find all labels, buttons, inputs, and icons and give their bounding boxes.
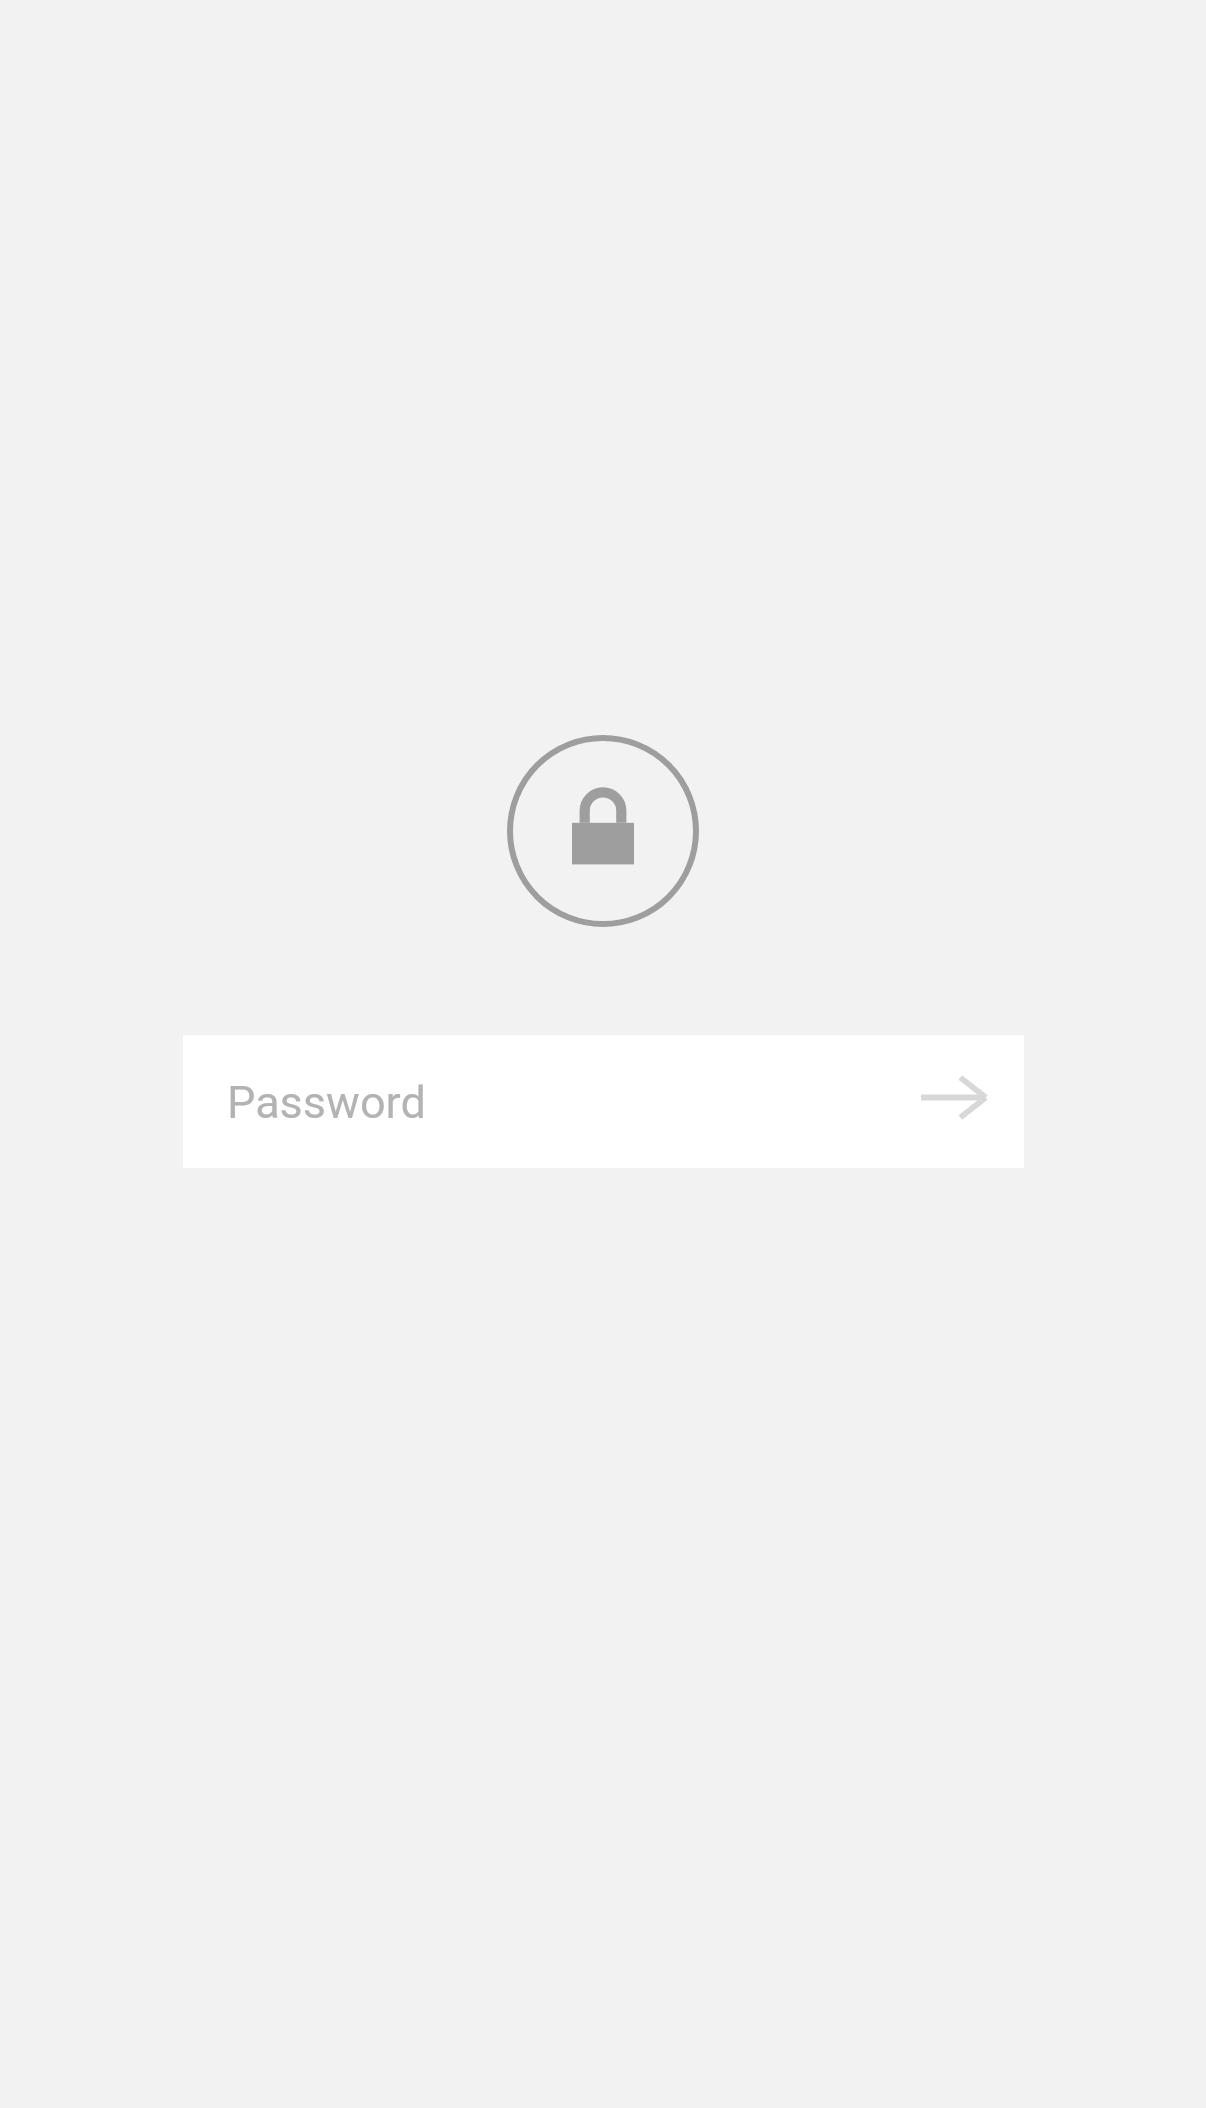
button[interactable]: Submit password xyxy=(905,1049,1001,1145)
button[interactable]: Password xyxy=(183,1035,1024,1168)
other: Locked xyxy=(507,735,699,927)
staticText: Password xyxy=(227,1076,426,1129)
